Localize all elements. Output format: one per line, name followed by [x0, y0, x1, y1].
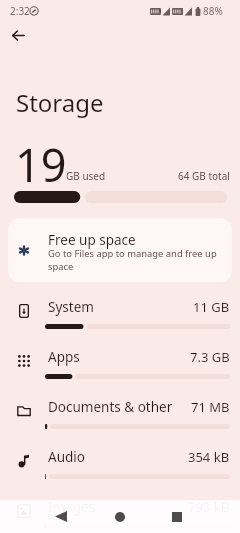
staticText: Storage — [16, 86, 104, 119]
staticText: 354 kB — [188, 448, 230, 466]
staticText: 2:32 — [10, 4, 30, 18]
staticText: Documents & other — [48, 398, 173, 416]
staticText: Apps — [48, 348, 80, 366]
button[interactable]: Home — [102, 500, 138, 533]
button[interactable]: Images — [0, 486, 240, 533]
staticText: 11 GB — [193, 298, 230, 316]
staticText: 793 kB — [188, 498, 230, 516]
staticText: 88% — [203, 4, 223, 18]
button[interactable]: Apps — [0, 336, 240, 386]
staticText: 19 — [15, 134, 67, 184]
staticText: Go to Files app to manage and free up sp… — [48, 247, 221, 273]
staticText: Audio — [48, 448, 85, 466]
staticText: 64 GB total — [178, 169, 230, 183]
staticText: Free up space — [48, 231, 136, 249]
staticText: 7.3 GB — [190, 348, 230, 366]
staticText: Images — [48, 498, 96, 516]
button[interactable]: Back — [6, 23, 30, 47]
staticText: 71 MB — [191, 398, 230, 416]
staticText: GB used — [66, 169, 106, 183]
button[interactable]: Free up space — [8, 218, 232, 282]
button[interactable]: Recent apps — [159, 500, 195, 533]
button[interactable]: Documents & other — [0, 386, 240, 436]
button[interactable]: Back — [43, 500, 79, 533]
button[interactable]: Audio — [0, 436, 240, 486]
staticText: System — [48, 298, 94, 316]
button[interactable]: System — [0, 286, 240, 336]
